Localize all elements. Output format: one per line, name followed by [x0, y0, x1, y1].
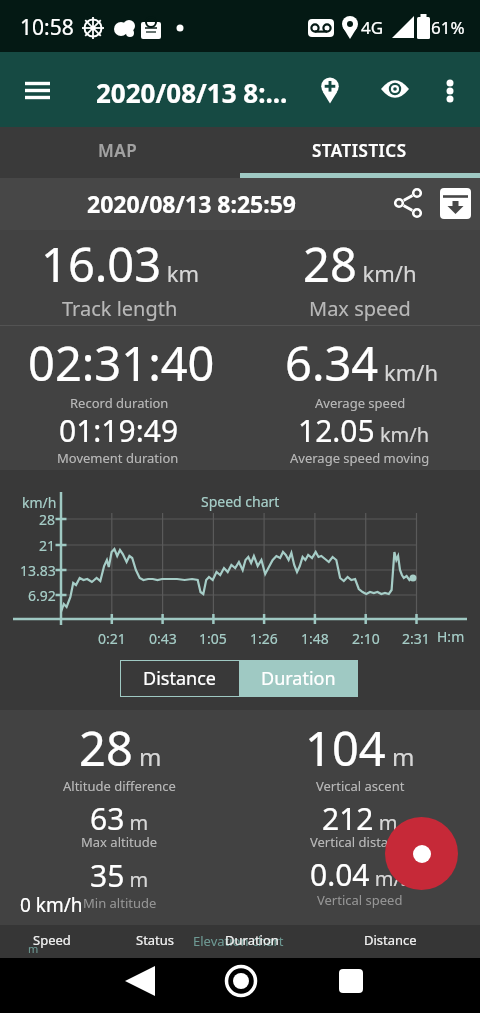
staticText: 61%: [431, 16, 465, 39]
staticText: 63 m: [90, 798, 149, 839]
staticText: Duration: [225, 931, 279, 949]
staticText: 0:43: [149, 629, 177, 648]
staticText: km/h: [22, 493, 57, 512]
staticText: 2020/08/13 8:...: [96, 75, 288, 110]
staticText: Track length: [62, 295, 178, 322]
button[interactable]: [240, 127, 480, 178]
staticText: 21: [39, 536, 56, 555]
staticText: 1:26: [250, 629, 278, 648]
staticText: 212 m: [322, 798, 398, 839]
staticText: Max altitude: [81, 833, 158, 851]
staticText: Speed: [33, 931, 71, 949]
staticText: Vertical speed: [317, 891, 403, 909]
staticText: 35 m: [90, 855, 149, 896]
staticText: m: [28, 941, 39, 956]
staticText: 2:31: [402, 629, 430, 648]
button[interactable]: [306, 66, 354, 114]
staticText: 28 km/h: [303, 232, 417, 296]
staticText: Distance: [143, 666, 216, 691]
staticText: 13.83: [20, 561, 56, 580]
staticText: Average speed moving: [290, 449, 430, 467]
staticText: Min altitude: [83, 894, 157, 912]
button[interactable]: [385, 817, 458, 890]
button[interactable]: [14, 62, 70, 118]
button[interactable]: [384, 180, 430, 228]
staticText: 104 m: [305, 716, 415, 780]
button[interactable]: [100, 958, 180, 1013]
button[interactable]: [311, 958, 391, 1013]
staticText: 6.34 km/h: [285, 331, 439, 395]
staticText: Duration: [261, 666, 336, 691]
staticText: Max speed: [309, 295, 411, 322]
staticText: 2020/08/13 8:25:59: [87, 188, 297, 219]
staticText: 4G: [361, 16, 384, 39]
staticText: 12.05 km/h: [298, 410, 430, 451]
button[interactable]: [434, 180, 480, 228]
staticText: 02:31:40: [28, 331, 215, 395]
staticText: 0:21: [98, 629, 126, 648]
staticText: Vertical distance: [310, 833, 410, 851]
staticText: 28 m: [79, 716, 162, 780]
staticText: Vertical ascent: [316, 777, 405, 795]
button[interactable]: [371, 66, 419, 114]
staticText: Movement duration: [57, 449, 179, 467]
staticText: Record duration: [70, 394, 169, 412]
staticText: 1:48: [301, 629, 329, 648]
staticText: STATISTICS: [312, 139, 407, 162]
staticText: Elevation chart: [193, 932, 284, 950]
staticText: H:m: [437, 627, 465, 646]
button[interactable]: [0, 127, 240, 178]
staticText: 1:05: [199, 629, 227, 648]
staticText: Average speed: [315, 394, 406, 412]
staticText: 16.03 km: [41, 232, 200, 296]
button[interactable]: [201, 958, 281, 1013]
staticText: 10:58: [20, 13, 74, 42]
staticText: Speed chart: [201, 492, 280, 511]
button[interactable]: Distance: [120, 660, 239, 697]
staticText: MAP: [98, 139, 138, 162]
staticText: 0.04 m/s: [310, 854, 411, 895]
button[interactable]: Duration: [239, 660, 358, 697]
staticText: 28: [39, 510, 56, 529]
button[interactable]: [428, 66, 472, 114]
staticText: Status: [136, 931, 175, 949]
staticText: Distance: [364, 931, 417, 949]
staticText: 01:19:49: [59, 410, 179, 451]
staticText: Altitude difference: [63, 777, 176, 795]
staticText: 6.92: [28, 586, 56, 605]
staticText: 0 km/h: [20, 892, 83, 918]
staticText: 2:10: [352, 629, 380, 648]
